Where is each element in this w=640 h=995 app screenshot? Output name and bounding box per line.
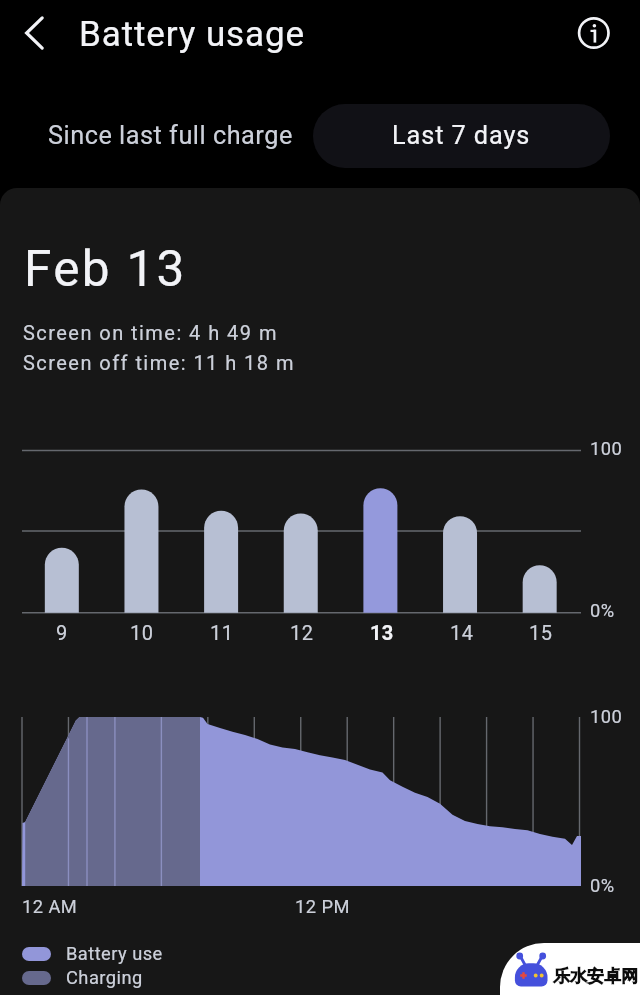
button[interactable]: Back (10, 9, 58, 57)
staticText: 100 (590, 706, 623, 727)
staticText: 11 (210, 621, 234, 644)
staticText: 12 AM (22, 896, 78, 917)
button[interactable]: Last 7 days (313, 104, 610, 168)
staticText: Last 7 days (392, 121, 531, 151)
staticText: 10 (130, 621, 154, 644)
staticText: 0% (590, 600, 615, 621)
staticText: Since last full charge (48, 121, 293, 151)
staticText: 0% (590, 875, 615, 896)
staticText: 12 PM (295, 896, 350, 917)
staticText: Charging (66, 967, 143, 988)
staticText: Feb 13 (24, 240, 187, 298)
staticText: Battery use (66, 943, 163, 964)
staticText: 100 (590, 438, 623, 459)
staticText: Battery usage (79, 14, 306, 55)
staticText: Screen on time: 4 h 49 m (23, 321, 278, 344)
staticText: Screen off time: 11 h 18 m (23, 351, 295, 374)
staticText: 13 (370, 621, 394, 644)
staticText: 15 (529, 621, 553, 644)
staticText: 14 (450, 621, 474, 644)
button[interactable]: Information (570, 9, 618, 57)
staticText: 乐水安卓网 (553, 966, 638, 987)
staticText: 9 (56, 621, 68, 644)
staticText: 12 (290, 621, 314, 644)
button[interactable]: Since last full charge (22, 104, 319, 168)
